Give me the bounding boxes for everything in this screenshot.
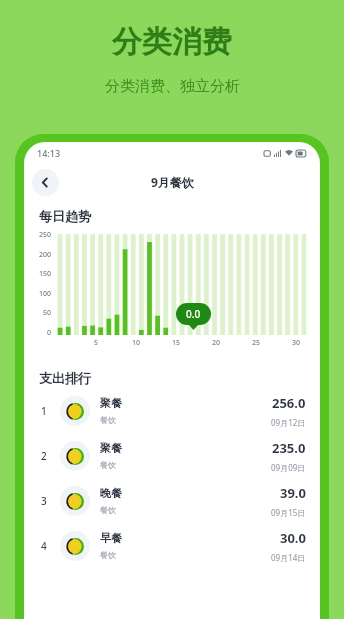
staticText: 晚餐 [100,486,122,500]
staticText: 3 [41,494,47,508]
staticText: 14:13 [37,147,61,159]
staticText: 25 [252,338,260,348]
staticText: 每日趋势 [39,208,91,224]
staticText: 30 [292,338,300,348]
button[interactable]: 3 [24,478,320,523]
staticText: 250 [39,230,52,240]
button[interactable]: 1 [24,388,320,433]
staticText: 09月12日 [271,417,306,428]
staticText: 09月15日 [271,507,306,518]
button[interactable]: 4 [24,523,320,568]
staticText: 餐饮 [100,505,116,515]
staticText: 15 [172,338,180,348]
staticText: 235.0 [272,439,306,457]
staticText: 200 [39,250,52,260]
staticText: 39.0 [280,484,306,502]
staticText: 150 [39,269,52,279]
staticText: 分类消费、独立分析 [105,77,240,96]
staticText: 10 [132,338,140,348]
staticText: 餐饮 [100,550,116,560]
staticText: 20 [212,338,220,348]
staticText: 100 [39,289,52,299]
staticText: 09月14日 [271,552,306,563]
staticText: 50 [43,308,52,318]
staticText: 30.0 [280,529,306,547]
button[interactable]: 返回 [32,169,59,196]
staticText: 1 [41,404,47,418]
staticText: 早餐 [100,531,122,545]
button[interactable]: 2 [24,433,320,478]
staticText: 支出排行 [39,370,91,386]
staticText: 9月餐饮 [151,174,194,190]
staticText: 餐饮 [100,460,116,470]
staticText: 2 [41,449,47,463]
staticText: 4 [41,539,47,553]
staticText: 聚餐 [100,396,122,410]
staticText: 0.0 [186,307,201,321]
staticText: 0 [47,328,52,338]
staticText: 分类消费 [112,23,232,61]
staticText: 聚餐 [100,441,122,455]
staticText: 256.0 [272,394,306,412]
staticText: 餐饮 [100,415,116,425]
staticText: 5 [94,338,99,348]
staticText: 09月09日 [271,462,306,473]
